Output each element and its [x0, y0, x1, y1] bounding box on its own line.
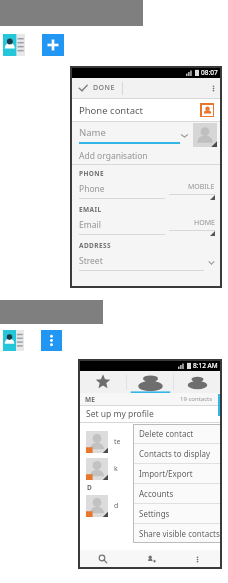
staticText: 19 contacts: [180, 395, 213, 403]
staticText: Contacts to display: [139, 448, 211, 459]
button[interactable]: Import/Export: [133, 464, 221, 483]
button[interactable]: Add contact: [127, 550, 174, 568]
staticText: Share visible contacts: [139, 528, 220, 539]
button[interactable]: Settings: [133, 504, 221, 523]
staticText: EMAIL: [79, 205, 102, 214]
button[interactable]: Phone contact: [71, 99, 221, 121]
button[interactable]: DONE: [78, 78, 205, 98]
staticText: Accounts: [139, 488, 174, 499]
staticText: MOBILE: [188, 182, 215, 192]
button[interactable]: Share visible contacts: [133, 524, 221, 543]
staticText: ME: [85, 395, 95, 404]
button[interactable]: Search: [79, 550, 127, 568]
button[interactable]: Contacts to display: [133, 444, 221, 463]
button[interactable]: More options: [174, 550, 221, 568]
button[interactable]: Accounts: [133, 484, 221, 503]
button[interactable]: More options: [205, 78, 221, 98]
button[interactable]: Tab: [174, 371, 221, 393]
staticText: Set up my profile: [86, 408, 154, 420]
button[interactable]: Phone: [71, 180, 221, 201]
button[interactable]: More options: [41, 330, 62, 351]
button[interactable]: k: [79, 455, 221, 482]
staticText: DONE: [93, 83, 115, 93]
staticText: D: [87, 483, 92, 492]
staticText: ADDRESS: [79, 241, 111, 250]
button[interactable]: Add: [42, 34, 64, 56]
staticText: Add organisation: [79, 150, 148, 162]
staticText: Street: [79, 255, 103, 267]
staticText: 8:12 AM: [193, 361, 218, 370]
staticText: Settings: [139, 508, 170, 519]
button[interactable]: Tab: [79, 371, 127, 393]
staticText: HOME: [194, 218, 215, 228]
staticText: Email: [79, 219, 101, 231]
button[interactable]: Delete contact: [133, 424, 221, 443]
staticText: Delete contact: [139, 428, 194, 439]
staticText: PHONE: [79, 169, 105, 178]
staticText: d: [114, 501, 119, 511]
button[interactable]: Street: [71, 252, 221, 273]
staticText: k: [114, 464, 118, 474]
button[interactable]: Contact photo: [193, 123, 217, 147]
button[interactable]: te: [79, 428, 221, 455]
button[interactable]: d: [79, 492, 221, 519]
staticText: Phone: [79, 183, 105, 195]
staticText: Import/Export: [139, 468, 193, 479]
staticText: 08:07: [201, 68, 218, 77]
staticText: Phone contact: [79, 104, 143, 117]
button[interactable]: Email: [71, 216, 221, 237]
staticText: te: [114, 437, 121, 447]
button[interactable]: Contacts tab: [127, 371, 174, 393]
staticText: Name: [79, 126, 106, 139]
